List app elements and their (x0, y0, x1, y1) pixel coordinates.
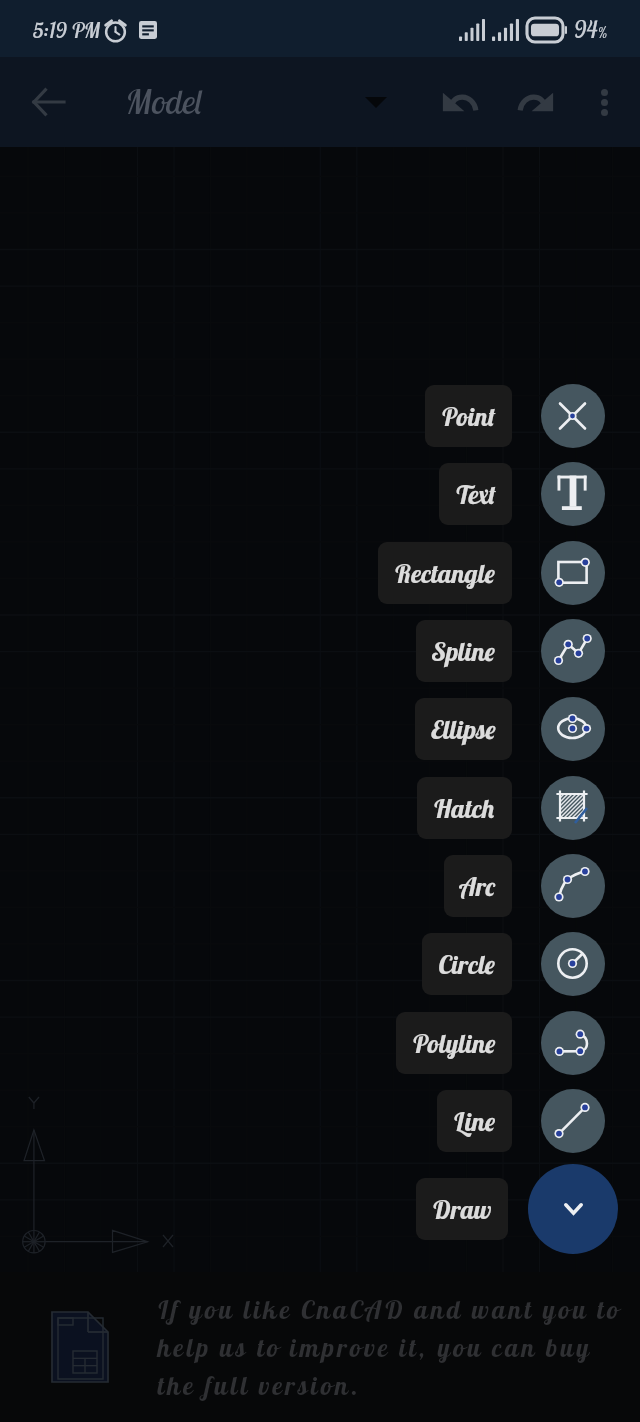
button[interactable]: Text (0, 462, 605, 526)
staticText: Spline (432, 635, 496, 668)
button[interactable]: Ellipse (0, 697, 605, 761)
staticText: Ellipse (431, 713, 496, 746)
button[interactable]: Rectangle (0, 541, 605, 605)
button[interactable]: Circle (0, 932, 605, 996)
staticText: Model (126, 80, 203, 123)
button[interactable]: Redo (504, 71, 566, 133)
button[interactable]: Spline (0, 619, 605, 683)
button[interactable]: Undo (429, 71, 491, 133)
staticText: Polyline (412, 1027, 496, 1060)
staticText: Arc (460, 870, 496, 903)
staticText: Hatch (433, 792, 496, 825)
button[interactable]: Hatch (0, 776, 605, 840)
staticText: % (598, 23, 608, 42)
button[interactable]: Model (126, 67, 387, 137)
staticText: 5:19 PM (33, 17, 100, 43)
button[interactable]: Line (0, 1089, 605, 1153)
staticText: If you like CnaCAD and want you to help … (157, 1293, 621, 1402)
button[interactable]: Back (18, 72, 78, 132)
staticText: Draw (432, 1193, 492, 1226)
button[interactable]: Point (0, 384, 605, 448)
button[interactable]: Polyline (0, 1011, 605, 1075)
button[interactable]: If you like CnaCAD and want you to help … (0, 1272, 640, 1422)
button[interactable]: Draw (0, 1164, 618, 1254)
other: Collapse tools (528, 1164, 618, 1254)
button[interactable]: More options (576, 74, 632, 130)
staticText: Rectangle (394, 557, 496, 590)
staticText: Circle (438, 948, 496, 981)
staticText: Line (453, 1105, 496, 1138)
staticText: 94 (574, 15, 598, 44)
staticText: Point (441, 400, 496, 433)
button[interactable]: Arc (0, 854, 605, 918)
staticText: Text (455, 478, 496, 511)
